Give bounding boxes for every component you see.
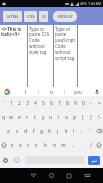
button[interactable]: Backspace: [94, 124, 103, 138]
button[interactable]: w: [7, 110, 15, 124]
button[interactable]: Home: [42, 168, 60, 183]
button[interactable]: Back: [24, 168, 42, 183]
staticText: 46%: [80, 1, 87, 6]
button[interactable]: 9: [71, 96, 79, 110]
staticText: 5: [42, 100, 45, 107]
button[interactable]: ,: [68, 138, 77, 152]
button[interactable]: Enter: [88, 156, 100, 165]
button[interactable]: l: [70, 124, 78, 138]
button[interactable]: r: [23, 110, 31, 124]
button[interactable]: Type or paste CSS Code without style tag: [28, 25, 53, 87]
button[interactable]: Voice input: [90, 87, 103, 96]
button[interactable]: m: [59, 138, 68, 152]
button[interactable]: k: [62, 124, 70, 138]
button[interactable]: 3: [23, 96, 31, 110]
button[interactable]: a: [4, 124, 13, 138]
button[interactable]: 4: [31, 96, 39, 110]
button[interactable]: /: [86, 138, 95, 152]
staticText: .: [81, 142, 83, 149]
button[interactable]: Emoji: [11, 152, 22, 168]
button[interactable]: .: [77, 138, 86, 152]
button[interactable]: ': [86, 124, 94, 138]
button[interactable]: Keyboard settings: [0, 152, 11, 168]
button[interactable]: j: [54, 124, 62, 138]
button[interactable]: =: [95, 96, 103, 110]
staticText: a: [7, 128, 10, 135]
staticText: \: [98, 114, 100, 121]
staticText: o: [65, 114, 69, 121]
button[interactable]: n: [50, 138, 59, 152]
staticText: HTML: [7, 14, 19, 20]
staticText: ,: [72, 142, 74, 149]
button[interactable]: \: [95, 110, 103, 124]
button[interactable]: `: [0, 96, 7, 110]
staticText: <i>This is italic</i>: [1, 26, 26, 38]
button[interactable]: i: [55, 110, 63, 124]
button[interactable]: -: [87, 96, 95, 110]
staticText: 1:04 AM: [88, 1, 102, 6]
button[interactable]: Shift: [0, 138, 8, 152]
staticText: 3: [26, 100, 29, 107]
staticText: CSS: [27, 14, 35, 20]
button[interactable]: o: [63, 110, 71, 124]
staticText: =: [98, 100, 101, 107]
staticText: 2: [18, 100, 21, 107]
staticText: you: [74, 89, 82, 95]
button[interactable]: h: [46, 124, 54, 138]
button[interactable]: you: [65, 87, 90, 96]
staticText: i: [58, 114, 60, 121]
button[interactable]: ;: [78, 124, 86, 138]
staticText: I: [25, 89, 27, 95]
button[interactable]: Recent apps: [60, 168, 78, 183]
button[interactable]: 1: [7, 96, 15, 110]
button[interactable]: I: [14, 87, 38, 96]
button[interactable]: is: [39, 87, 64, 96]
staticText: 9: [74, 100, 77, 107]
button[interactable]: 0: [79, 96, 87, 110]
button[interactable]: CSS: [24, 11, 37, 22]
staticText: z: [11, 142, 14, 149]
button[interactable]: Google search: [0, 87, 14, 96]
button[interactable]: c: [24, 138, 32, 152]
staticText: 7: [58, 100, 61, 107]
staticText: p: [73, 114, 77, 121]
button[interactable]: d: [22, 124, 30, 138]
button[interactable]: 6: [47, 96, 55, 110]
button[interactable]: f: [30, 124, 38, 138]
button[interactable]: s: [13, 124, 22, 138]
button[interactable]: v: [32, 138, 41, 152]
button[interactable]: g: [38, 124, 46, 138]
button[interactable]: Shift: [95, 138, 103, 152]
button[interactable]: ]: [87, 110, 95, 124]
button[interactable]: 7: [55, 96, 63, 110]
button[interactable]: <i>This is italic</i>: [0, 25, 27, 87]
staticText: g: [40, 128, 44, 135]
button[interactable]: e: [15, 110, 23, 124]
staticText: Type or paste CSS Code without style tag: [29, 26, 52, 56]
button[interactable]: 2: [15, 96, 23, 110]
button[interactable]: b: [41, 138, 50, 152]
staticText: m: [61, 142, 66, 149]
button[interactable]: p: [71, 110, 79, 124]
staticText: q: [2, 114, 6, 121]
button[interactable]: u: [47, 110, 55, 124]
staticText: v: [35, 142, 38, 149]
staticText: Type or paste JavaScript Code without sc…: [55, 26, 76, 62]
button[interactable]: Switch keyboard: [78, 168, 96, 183]
button[interactable]: z: [8, 138, 16, 152]
staticText: f: [33, 128, 35, 135]
button[interactable]: Type or paste JavaScript Code without sc…: [54, 25, 77, 87]
button[interactable]: [: [79, 110, 87, 124]
button[interactable]: 5: [39, 96, 47, 110]
button[interactable]: RESULT: [53, 11, 77, 22]
button[interactable]: y: [39, 110, 47, 124]
button[interactable]: q: [0, 110, 7, 124]
button[interactable]: HTML: [3, 11, 22, 22]
staticText: r: [26, 114, 29, 121]
button[interactable]: t: [31, 110, 39, 124]
staticText: 8: [66, 100, 69, 107]
button[interactable]: JS: [39, 11, 48, 22]
button[interactable]: x: [16, 138, 24, 152]
button[interactable]: 8: [63, 96, 71, 110]
